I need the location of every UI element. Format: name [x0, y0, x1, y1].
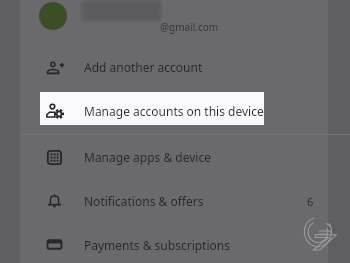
- button[interactable]: Account avatar: [39, 2, 67, 30]
- staticText: @gmail.com: [160, 20, 219, 34]
- staticText: Notifications & offers: [84, 193, 204, 209]
- button[interactable]: Manage accounts on this device: [0, 92, 350, 134]
- button[interactable]: Manage apps & device: [0, 140, 350, 182]
- staticText: Payments & subscriptions: [84, 237, 230, 253]
- button[interactable]: Payments & subscriptions: [0, 229, 350, 263]
- staticText: Add another account: [84, 59, 203, 75]
- staticText: Manage apps & device: [84, 149, 211, 165]
- button[interactable]: Add another account: [0, 50, 350, 92]
- staticText: Manage accounts on this device: [84, 103, 264, 119]
- staticText: 6: [307, 194, 314, 209]
- button[interactable]: Notifications & offers: [0, 185, 350, 227]
